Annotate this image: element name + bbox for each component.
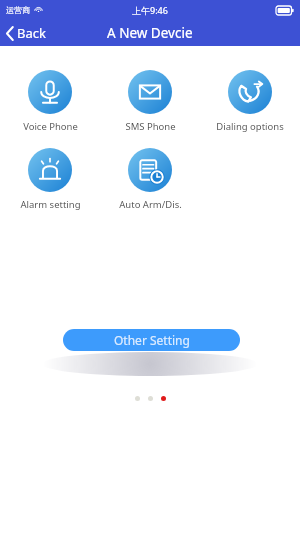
button[interactable]: Other Setting (63, 329, 240, 351)
staticText: Voice Phone (23, 120, 78, 133)
staticText: Other Setting (114, 332, 190, 348)
button[interactable]: Auto Arm Disarm (100, 148, 200, 211)
staticText: Back (17, 24, 46, 42)
button[interactable]: Alarm setting (0, 148, 100, 211)
staticText: 上午9:46 (132, 4, 168, 16)
button[interactable]: SMS Phone (100, 70, 200, 133)
staticText: SMS Phone (125, 120, 176, 133)
staticText: Auto Arm/Dis. (119, 198, 182, 211)
button[interactable]: Voice Phone (0, 70, 100, 133)
staticText: Alarm setting (20, 198, 81, 211)
staticText: 运营商 (6, 5, 30, 15)
staticText: A New Devcie (107, 24, 193, 42)
button[interactable]: Back (0, 20, 58, 46)
staticText: Dialing options (216, 120, 284, 133)
button[interactable]: Dialing options (200, 70, 300, 133)
